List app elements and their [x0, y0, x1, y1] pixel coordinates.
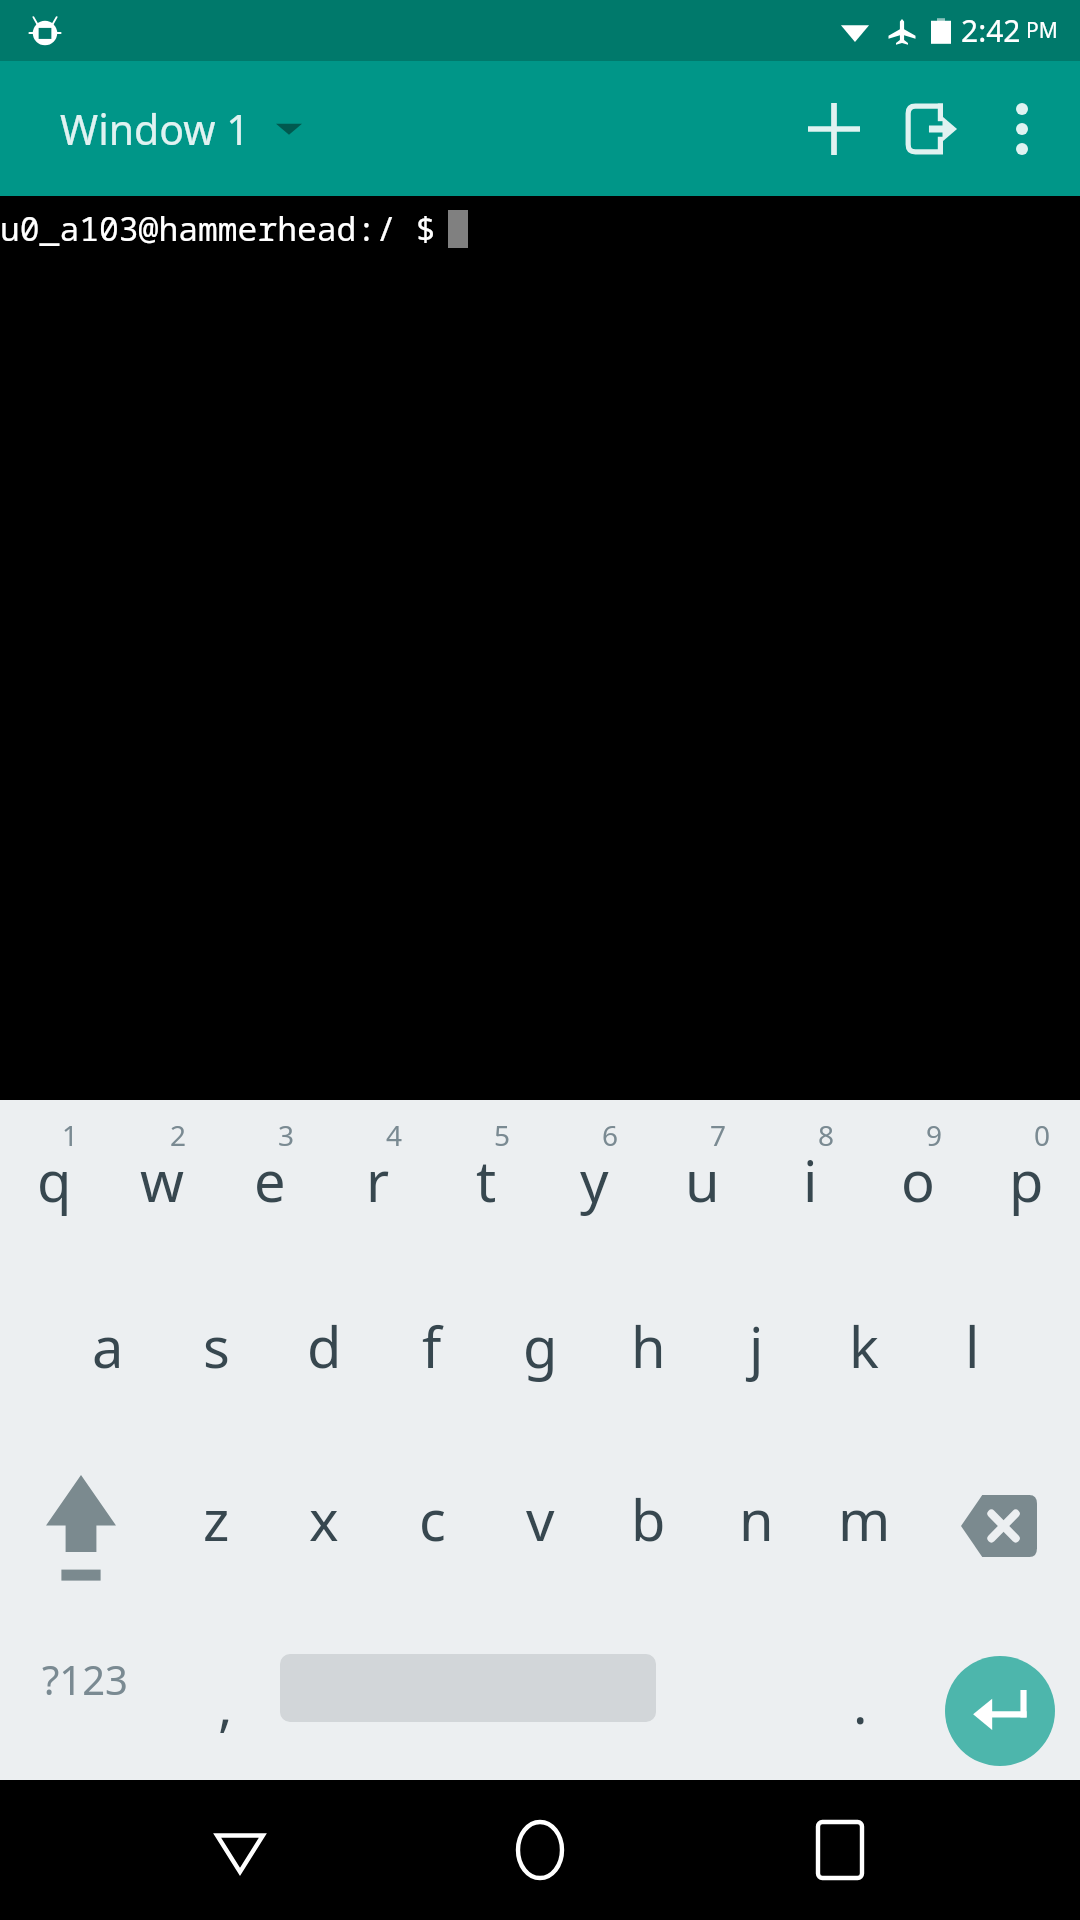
- staticText: ,: [218, 1668, 233, 1742]
- staticText: g: [523, 1308, 558, 1384]
- button[interactable]: m: [810, 1453, 918, 1628]
- staticText: 9: [926, 1116, 943, 1154]
- button[interactable]: Home: [480, 1790, 600, 1910]
- staticText: i: [803, 1142, 818, 1218]
- staticText: k: [849, 1308, 879, 1384]
- staticText: t: [476, 1142, 497, 1218]
- staticText: 2: [170, 1116, 187, 1154]
- button[interactable]: .: [790, 1628, 930, 1780]
- staticText: 5: [494, 1116, 511, 1154]
- button[interactable]: 7: [648, 1100, 756, 1278]
- staticText: s: [203, 1308, 230, 1384]
- staticText: m: [838, 1481, 891, 1557]
- button[interactable]: 8: [756, 1100, 864, 1278]
- staticText: d: [307, 1308, 342, 1384]
- staticText: q: [37, 1142, 72, 1218]
- staticText: ?123: [42, 1652, 128, 1706]
- staticText: j: [749, 1308, 764, 1384]
- staticText: p: [1009, 1142, 1044, 1218]
- button[interactable]: g: [486, 1278, 594, 1453]
- button[interactable]: ,: [170, 1628, 280, 1780]
- staticText: b: [631, 1481, 666, 1557]
- button[interactable]: n: [702, 1453, 810, 1628]
- staticText: 7: [710, 1116, 727, 1154]
- button[interactable]: k: [810, 1278, 918, 1453]
- button[interactable]: More options: [978, 85, 1066, 173]
- button[interactable]: 0: [972, 1100, 1080, 1278]
- staticText: Window 1: [60, 101, 250, 157]
- button[interactable]: Window 1: [60, 101, 302, 157]
- button[interactable]: ?123: [0, 1628, 170, 1780]
- staticText: v: [526, 1481, 555, 1557]
- button[interactable]: d: [270, 1278, 378, 1453]
- staticText: 3: [278, 1116, 295, 1154]
- staticText: x: [309, 1481, 339, 1557]
- staticText: f: [422, 1308, 442, 1384]
- button[interactable]: s: [162, 1278, 270, 1453]
- staticText: l: [965, 1308, 980, 1384]
- staticText: 4: [386, 1116, 403, 1154]
- button[interactable]: Enter: [945, 1656, 1055, 1766]
- button[interactable]: Back: [180, 1790, 300, 1910]
- button[interactable]: 3: [216, 1100, 324, 1278]
- staticText: 2:42: [961, 10, 1021, 51]
- staticText: 0: [1034, 1116, 1051, 1154]
- staticText: 8: [818, 1116, 835, 1154]
- button[interactable]: x: [270, 1453, 378, 1628]
- button[interactable]: b: [594, 1453, 702, 1628]
- button[interactable]: Backspace: [918, 1453, 1080, 1628]
- button[interactable]: c: [378, 1453, 486, 1628]
- staticText: r: [366, 1142, 390, 1218]
- staticText: PM: [1026, 16, 1058, 45]
- staticText: z: [203, 1481, 230, 1557]
- button[interactable]: j: [702, 1278, 810, 1453]
- staticText: .: [853, 1666, 868, 1740]
- staticText: e: [254, 1142, 286, 1218]
- button[interactable]: 6: [540, 1100, 648, 1278]
- button[interactable]: h: [594, 1278, 702, 1453]
- button[interactable]: Shift: [0, 1453, 162, 1628]
- button[interactable]: a: [54, 1278, 162, 1453]
- staticText: a: [92, 1308, 124, 1384]
- staticText: y: [580, 1142, 609, 1218]
- button[interactable]: 9: [864, 1100, 972, 1278]
- button[interactable]: l: [918, 1278, 1026, 1453]
- staticText: h: [631, 1308, 666, 1384]
- staticText: u: [685, 1142, 720, 1218]
- button[interactable]: 2: [108, 1100, 216, 1278]
- staticText: c: [419, 1481, 446, 1557]
- button[interactable]: 5: [432, 1100, 540, 1278]
- button[interactable]: New window: [786, 81, 882, 177]
- staticText: o: [901, 1142, 935, 1218]
- button[interactable]: Recents: [780, 1790, 900, 1910]
- button[interactable]: z: [162, 1453, 270, 1628]
- staticText: u0_a103@hammerhead:/ $: [0, 206, 436, 251]
- staticText: w: [140, 1142, 185, 1218]
- button[interactable]: 1: [0, 1100, 108, 1278]
- button[interactable]: 4: [324, 1100, 432, 1278]
- button[interactable]: Exit session: [882, 81, 978, 177]
- staticText: n: [739, 1481, 774, 1557]
- staticText: 1: [62, 1116, 79, 1154]
- button[interactable]: v: [486, 1453, 594, 1628]
- staticText: 6: [602, 1116, 619, 1154]
- button[interactable]: f: [378, 1278, 486, 1453]
